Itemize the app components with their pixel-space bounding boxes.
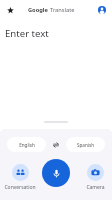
staticText: Enter text — [5, 27, 49, 40]
button[interactable]: Swap languages — [46, 137, 66, 152]
button[interactable]: Conversation — [4, 164, 36, 191]
staticText: Translate — [50, 6, 75, 14]
staticText: English — [19, 142, 35, 148]
staticText: Camera — [86, 184, 105, 191]
button[interactable]: Saved — [0, 0, 20, 20]
button[interactable]: Account — [92, 0, 112, 20]
button[interactable]: English — [7, 137, 46, 152]
button[interactable]: Microphone — [42, 159, 70, 187]
staticText: Conversation — [4, 184, 36, 191]
button[interactable]: Camera — [86, 164, 105, 191]
staticText: Spanish — [77, 142, 94, 148]
staticText: Google — [28, 6, 48, 14]
button[interactable]: Spanish — [66, 137, 105, 152]
